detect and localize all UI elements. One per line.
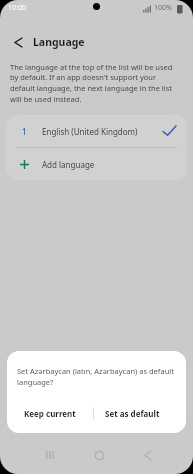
staticText: Set Azərbaycan (latın, Azərbaycan) as de… <box>17 366 174 387</box>
staticText: 10:00 <box>8 3 26 13</box>
button[interactable] <box>35 440 65 470</box>
staticText: Keep current <box>24 408 76 419</box>
staticText: 10:00 <box>8 3 26 13</box>
staticText: Add language <box>42 159 95 170</box>
button[interactable]: Keep current <box>7 393 93 433</box>
button[interactable]: Set as default <box>94 393 186 433</box>
staticText: 100% <box>154 3 172 13</box>
button[interactable]: 1 <box>6 115 187 147</box>
staticText: 1 <box>22 126 27 137</box>
button[interactable]: Add language <box>6 148 187 180</box>
staticText: The language at the top of the list will… <box>10 62 173 105</box>
button[interactable] <box>6 30 30 54</box>
staticText: Set as default <box>105 408 160 419</box>
button[interactable] <box>84 440 114 470</box>
staticText: Language <box>33 35 85 49</box>
staticText: English (United Kingdom) <box>42 126 163 137</box>
button[interactable] <box>133 440 163 470</box>
